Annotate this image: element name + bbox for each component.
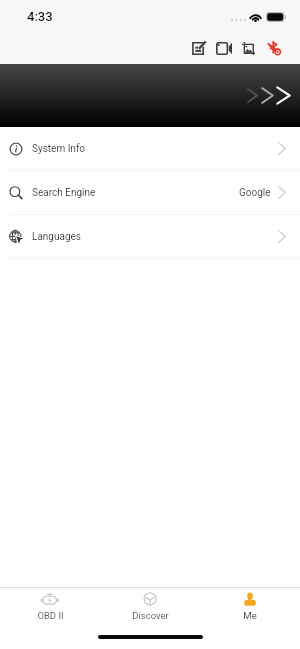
staticText: System Info [32,143,86,155]
button[interactable]: Bluetooth disconnected [261,33,286,63]
staticText: Languages [32,231,81,243]
button[interactable]: OBD II [0,588,100,625]
button[interactable]: Search Engine [0,171,300,214]
button[interactable]: Languages [0,215,300,258]
button[interactable]: System Info [0,127,300,170]
staticText: Discover [132,610,169,621]
staticText: Google [239,187,271,199]
staticText: Me [243,610,257,621]
staticText: OBD II [37,610,64,621]
staticText: Search Engine [32,187,96,199]
button[interactable]: Record video [211,33,236,63]
button[interactable]: Discover [100,588,200,625]
button[interactable]: Screenshot [236,33,261,63]
staticText: 4:33 [27,9,53,24]
button[interactable]: Me [200,588,300,625]
button[interactable]: Notes [186,33,211,63]
